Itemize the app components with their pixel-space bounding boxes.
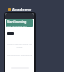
staticText: consectetur adipiscing: [5, 53, 34, 56]
staticText: Academy: [12, 7, 32, 11]
staticText: Lorem ipsum dolor sit amet: [5, 42, 34, 48]
other: Academy logo: [8, 8, 11, 11]
button[interactable]: Academy logo: [8, 7, 32, 11]
staticText: Pick up where you: [7, 25, 27, 27]
button[interactable]: Start learning: [6, 19, 33, 27]
button[interactable]: [7, 32, 14, 35]
staticText: Start learning: [7, 20, 27, 24]
